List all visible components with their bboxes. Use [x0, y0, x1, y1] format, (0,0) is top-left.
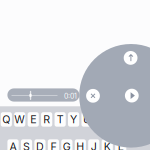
staticText: 0:01 — [64, 92, 77, 100]
staticText: T — [57, 113, 64, 126]
staticText: A — [9, 140, 16, 150]
button[interactable]: Q — [1, 112, 12, 127]
button[interactable]: W — [14, 112, 25, 127]
button[interactable]: Send — [124, 51, 137, 65]
staticText: R — [43, 113, 50, 126]
button[interactable]: E — [28, 112, 39, 127]
staticText: K — [104, 140, 111, 150]
staticText: L — [118, 140, 124, 150]
button[interactable]: D — [34, 139, 46, 150]
button[interactable]: T — [54, 112, 66, 127]
button[interactable]: A — [7, 139, 19, 150]
staticText: U — [83, 113, 91, 126]
staticText: F — [50, 140, 56, 150]
staticText: Q — [2, 113, 10, 126]
staticText: D — [36, 140, 44, 150]
staticText: W — [14, 113, 25, 126]
button[interactable]: Play — [125, 89, 139, 102]
staticText: E — [30, 113, 36, 126]
button[interactable]: S — [21, 139, 32, 150]
button[interactable]: U — [81, 112, 93, 127]
button[interactable]: Y — [68, 112, 79, 127]
button[interactable]: F — [48, 139, 59, 150]
button[interactable]: J — [88, 139, 99, 150]
staticText: J — [91, 140, 97, 150]
button[interactable]: L — [115, 139, 126, 150]
button[interactable]: H — [75, 139, 86, 150]
staticText: Y — [70, 113, 77, 126]
button[interactable]: K — [102, 139, 113, 150]
staticText: G — [63, 140, 71, 150]
button[interactable]: G — [61, 139, 72, 150]
staticText: S — [23, 140, 30, 150]
button[interactable]: Cancel — [86, 89, 100, 103]
button[interactable]: R — [41, 112, 52, 127]
staticText: H — [76, 140, 84, 150]
